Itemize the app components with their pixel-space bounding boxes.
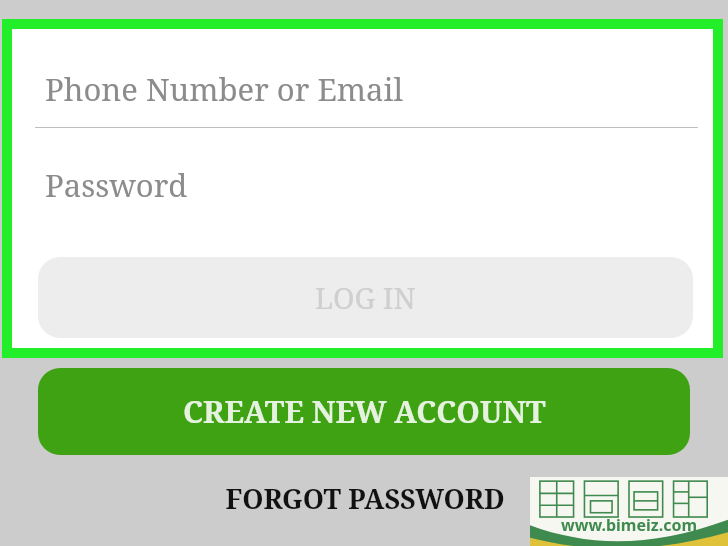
button[interactable]: Password [35, 150, 698, 220]
staticText: CREATE NEW ACCOUNT [183, 391, 546, 432]
staticText: Password [45, 164, 188, 206]
button[interactable]: FORGOT PASSWORD [195, 478, 535, 518]
staticText: FORGOT PASSWORD [225, 480, 505, 517]
staticText: Phone Number or Email [45, 68, 403, 110]
button[interactable]: CREATE NEW ACCOUNT [38, 368, 690, 455]
button[interactable]: Phone Number or Email [35, 50, 698, 128]
staticText: LOG IN [315, 278, 416, 317]
staticText: www.bimeiz.com [561, 514, 698, 536]
button[interactable]: LOG IN [38, 257, 693, 338]
